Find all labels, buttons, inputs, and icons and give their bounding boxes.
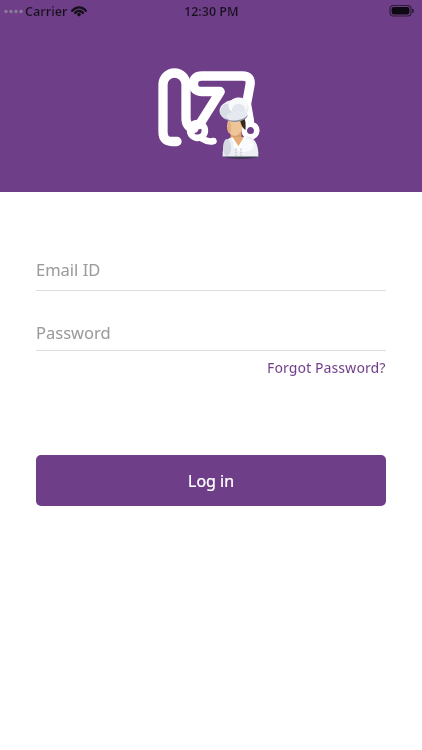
button[interactable]: Email ID: [36, 258, 386, 291]
button[interactable]: Log in: [36, 455, 386, 506]
staticText: Password: [36, 321, 111, 343]
staticText: Email ID: [36, 258, 101, 280]
button[interactable]: Forgot Password?: [267, 358, 386, 377]
staticText: Forgot Password?: [267, 358, 386, 377]
staticText: Carrier: [25, 3, 68, 20]
staticText: Log in: [188, 470, 235, 492]
button[interactable]: Password: [36, 321, 386, 351]
staticText: 12:30 PM: [184, 3, 239, 20]
